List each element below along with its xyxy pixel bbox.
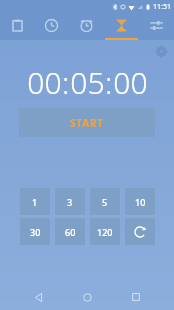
staticText: 60 <box>65 226 76 238</box>
button[interactable]: Notes <box>0 13 34 40</box>
button[interactable]: 05 <box>70 62 105 100</box>
staticText: 11:51 <box>153 2 171 12</box>
button[interactable]: 1 <box>20 188 50 215</box>
staticText: : <box>105 62 113 100</box>
staticText: 10 <box>135 196 146 208</box>
button[interactable]: 5 <box>90 188 120 215</box>
button[interactable]: Reset <box>125 218 155 245</box>
button[interactable]: Alarm <box>69 13 104 40</box>
staticText: 5 <box>102 196 108 208</box>
button[interactable]: Settings <box>139 13 174 40</box>
button[interactable]: 10 <box>125 188 155 215</box>
button[interactable]: Timer <box>104 13 139 40</box>
button[interactable]: 120 <box>90 218 120 245</box>
button[interactable]: Clock <box>34 13 69 40</box>
button[interactable]: Back <box>27 286 49 308</box>
button[interactable]: START <box>19 108 155 137</box>
staticText: 3 <box>67 196 73 208</box>
staticText: START <box>70 116 104 130</box>
staticText: : <box>62 62 70 100</box>
staticText: 1 <box>32 196 38 208</box>
button[interactable]: 00 <box>113 62 148 100</box>
button[interactable]: 3 <box>55 188 85 215</box>
staticText: 30 <box>30 226 41 238</box>
button[interactable]: Home <box>76 286 98 308</box>
button[interactable]: Settings <box>155 45 168 58</box>
button[interactable]: 00 <box>27 62 62 100</box>
button[interactable]: 30 <box>20 218 50 245</box>
button[interactable]: 60 <box>55 218 85 245</box>
staticText: 120 <box>97 226 113 238</box>
button[interactable]: Recents <box>125 286 147 308</box>
